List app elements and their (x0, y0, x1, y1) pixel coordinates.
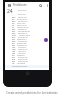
button[interactable]: bel (5, 42, 49, 44)
staticText: Predictions (13, 3, 27, 7)
button[interactable]: alw (5, 28, 49, 30)
staticText: example of (18, 60, 28, 62)
staticText: could be (18, 52, 26, 54)
staticText: always on (18, 28, 27, 30)
staticText: dur (12, 56, 16, 58)
button[interactable]: alr (5, 26, 49, 28)
staticText: during the (18, 56, 28, 58)
staticText: beginning (18, 40, 28, 42)
staticText: live now (18, 13, 26, 15)
staticText: different (17, 54, 25, 56)
staticText: change it (18, 46, 27, 48)
staticText: following (17, 62, 26, 64)
staticText: about the (18, 16, 27, 18)
button[interactable]: add (5, 20, 49, 22)
button[interactable]: aft (5, 22, 49, 24)
staticText: anything else (18, 30, 30, 32)
staticText: after that (17, 22, 26, 24)
staticText: 24 (7, 8, 13, 14)
button[interactable]: Navigation menu (7, 3, 12, 8)
button[interactable]: dif (5, 54, 49, 56)
staticText: add (12, 20, 16, 22)
staticText: appears to (18, 32, 28, 34)
button[interactable]: con (5, 50, 49, 52)
button[interactable]: dur (5, 56, 49, 58)
staticText: aft (12, 22, 15, 24)
button[interactable]: exa (5, 60, 49, 62)
button[interactable]: Search (38, 3, 43, 8)
staticText: believe me (17, 42, 27, 44)
button[interactable]: fol (5, 62, 49, 64)
button[interactable]: app (5, 32, 49, 34)
button[interactable]: beg (5, 40, 49, 42)
staticText: eve (12, 58, 16, 60)
staticText: exa (12, 60, 16, 62)
staticText: coming up (18, 48, 28, 50)
staticText: cou (12, 52, 16, 54)
staticText: bel (12, 42, 15, 44)
staticText: ag (12, 24, 15, 26)
staticText: everything (18, 58, 28, 60)
staticText: before you (17, 38, 27, 40)
staticText: bec (12, 36, 16, 38)
staticText: acc (12, 18, 15, 20)
button[interactable]: ag (5, 24, 49, 26)
staticText: bef (12, 38, 15, 40)
button[interactable]: bec (5, 36, 49, 38)
staticText: because of (18, 36, 28, 38)
staticText: address to (18, 20, 28, 22)
button[interactable]: acc (5, 18, 49, 20)
button[interactable]: suggested word (5, 65, 49, 68)
staticText: suggested word (12, 65, 28, 68)
button[interactable]: arou (5, 34, 49, 36)
button[interactable]: More options (45, 3, 49, 8)
button[interactable]: abo (5, 16, 49, 18)
staticText: beg (12, 40, 16, 42)
staticText: word lists (18, 9, 27, 12)
staticText: continue (18, 50, 26, 52)
staticText: con (12, 50, 16, 52)
button[interactable]: any (5, 30, 49, 32)
staticText: fol (12, 62, 15, 64)
staticText: arou (12, 34, 17, 36)
staticText: abo (12, 16, 16, 18)
staticText: again soon (17, 24, 27, 26)
button[interactable]: bef (5, 38, 49, 40)
button[interactable]: cha (5, 46, 49, 48)
staticText: already done (17, 26, 29, 28)
button[interactable]: cou (5, 52, 49, 54)
staticText: alr (12, 26, 15, 28)
staticText: dif (12, 54, 15, 56)
staticText: alw (12, 28, 16, 30)
button[interactable]: com (5, 48, 49, 50)
staticText: app (12, 32, 16, 34)
button[interactable]: eve (5, 58, 49, 60)
staticText: cha (12, 46, 16, 48)
staticText: around here (19, 34, 30, 36)
button[interactable]: bet (5, 44, 49, 46)
staticText: any (12, 30, 16, 32)
staticText: Create word predictions for live website… (6, 91, 58, 95)
staticText: com (12, 48, 16, 50)
staticText: between us (17, 44, 28, 46)
button[interactable]: Add prediction (44, 38, 48, 42)
staticText: account for (17, 18, 28, 20)
staticText: bet (12, 44, 15, 46)
